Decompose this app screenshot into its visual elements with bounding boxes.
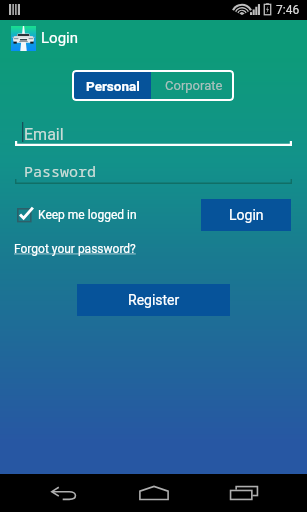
staticText: 7:46 xyxy=(276,3,300,17)
button[interactable]: Register xyxy=(77,284,230,316)
staticText: Register xyxy=(128,292,180,308)
button[interactable]: Recent apps xyxy=(219,474,269,512)
button[interactable]: Forgot your password? xyxy=(14,242,136,256)
button[interactable]: Personal xyxy=(74,72,151,99)
button[interactable]: Back xyxy=(39,474,89,512)
button[interactable]: Home xyxy=(129,474,179,512)
staticText: Login xyxy=(41,29,78,47)
button[interactable]: Keep me logged in xyxy=(15,205,137,224)
staticText: Corporate xyxy=(165,78,223,93)
button[interactable]: Login xyxy=(201,199,291,231)
staticText: Personal xyxy=(86,78,140,94)
staticText: Login xyxy=(229,207,264,223)
staticText: Keep me logged in xyxy=(38,208,137,222)
staticText: Password xyxy=(24,161,97,181)
staticText: Forgot your password? xyxy=(14,242,136,256)
button[interactable]: Corporate xyxy=(153,70,234,101)
staticText: Email xyxy=(24,125,64,144)
